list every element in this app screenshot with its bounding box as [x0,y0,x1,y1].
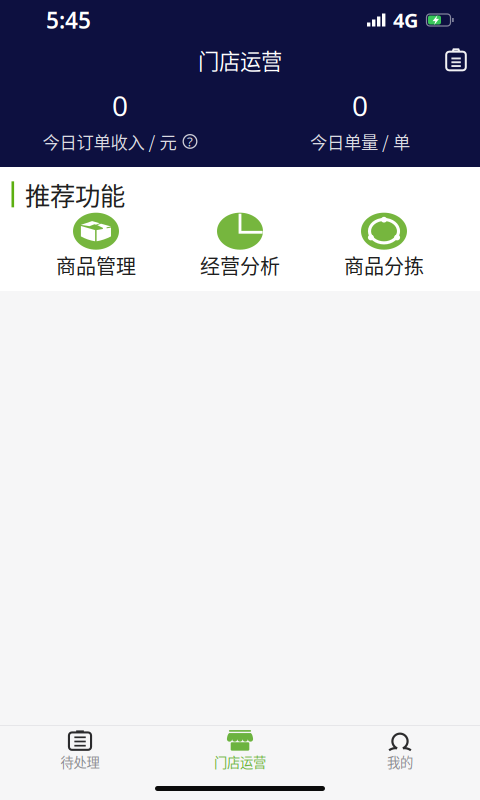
button[interactable]: 经营分析 [168,213,312,280]
staticText: 商品管理 [56,251,136,280]
button[interactable]: 商品分拣 [312,213,456,280]
staticText: 4G [393,7,418,33]
staticText: 推荐功能 [25,176,125,213]
button[interactable]: 商品管理 [24,213,168,280]
staticText: 0 [352,87,368,124]
button[interactable]: 门店运营 [160,724,320,775]
staticText: 今日订单收入 / 元 [42,129,176,154]
staticText: 门店运营 [198,45,282,75]
staticText: 经营分析 [200,251,280,280]
staticText: 门店运营 [214,752,266,771]
staticText: 0 [112,87,128,124]
button[interactable]: 我的 [320,724,480,775]
button[interactable]: 待处理 [0,724,160,775]
staticText: 待处理 [60,752,99,771]
staticText: ? [187,133,193,150]
staticText: 今日单量 / 单 [310,129,410,154]
staticText: 商品分拣 [344,251,424,280]
button[interactable]: 订单记录 [432,40,480,79]
staticText: 5:45 [46,5,91,35]
staticText: 我的 [387,752,413,771]
button[interactable]: 0 [240,87,480,154]
button[interactable]: 0 [0,87,240,154]
